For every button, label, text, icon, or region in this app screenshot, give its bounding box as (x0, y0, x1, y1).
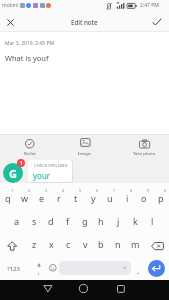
button[interactable]: CHECK SPELLING (28, 160, 72, 182)
button[interactable]: i (119, 189, 135, 207)
staticText: a (14, 215, 20, 227)
button[interactable]: ?123 (2, 260, 24, 278)
staticText: 1 (20, 160, 23, 166)
staticText: 2:47 PM (140, 2, 159, 9)
button[interactable]: q (0, 189, 16, 207)
button[interactable] (37, 263, 41, 270)
staticText: g (82, 215, 88, 227)
staticText: 6 (96, 188, 99, 193)
button[interactable]: k (127, 212, 143, 230)
staticText: mobinl (2, 2, 19, 9)
button[interactable] (7, 241, 17, 251)
staticText: your (33, 170, 51, 181)
staticText: Edit note (71, 18, 98, 26)
staticText: s (32, 215, 37, 227)
staticText: p (158, 192, 164, 204)
button[interactable]: d (43, 212, 59, 230)
staticText: j (117, 215, 120, 227)
staticText: z (32, 238, 37, 250)
button[interactable]: , (34, 262, 44, 280)
button[interactable]: m (127, 235, 143, 253)
staticText: 7 (113, 188, 116, 193)
button[interactable]: b (93, 235, 109, 253)
staticText: 5 (79, 188, 82, 193)
button[interactable] (7, 19, 14, 26)
staticText: n (115, 238, 121, 250)
staticText: x (49, 238, 54, 250)
button[interactable] (139, 139, 150, 148)
button[interactable] (151, 242, 164, 250)
staticText: 3 (45, 188, 48, 193)
staticText: Take photo (133, 150, 156, 156)
button[interactable]: n (110, 235, 126, 253)
staticText: q (5, 192, 11, 204)
button[interactable]: t (68, 189, 84, 207)
button[interactable]: w (17, 189, 33, 207)
button[interactable] (59, 261, 131, 275)
button[interactable] (80, 138, 91, 147)
staticText: 4 (62, 188, 65, 193)
staticText: r (57, 192, 61, 204)
staticText: ?123 (7, 265, 20, 273)
button[interactable]: g (77, 212, 93, 230)
staticText: 8 (130, 188, 133, 193)
button[interactable]: l (144, 212, 160, 230)
staticText: k (133, 215, 138, 227)
staticText: u (107, 192, 113, 204)
button[interactable] (25, 139, 35, 149)
staticText: 2 (28, 188, 31, 193)
button[interactable] (148, 260, 165, 277)
button[interactable]: y (85, 189, 101, 207)
staticText: l (151, 215, 154, 227)
button[interactable] (117, 285, 125, 293)
staticText: , (38, 267, 40, 276)
button[interactable]: e (34, 189, 50, 207)
button[interactable]: p (153, 189, 169, 207)
button[interactable] (152, 18, 162, 26)
staticText: y (91, 192, 96, 204)
staticText: Image (78, 150, 91, 156)
button[interactable]: o (136, 189, 152, 207)
staticText: t (74, 192, 78, 204)
button[interactable]: z (26, 235, 42, 253)
button[interactable]: s (26, 212, 42, 230)
button[interactable] (79, 284, 88, 293)
button[interactable]: c (60, 235, 76, 253)
staticText: G (9, 166, 17, 181)
button[interactable]: a (9, 212, 25, 230)
staticText: Bullet (24, 150, 36, 156)
staticText: i (126, 192, 129, 204)
staticText: . (137, 264, 140, 276)
button[interactable]: f (60, 212, 76, 230)
staticText: c (66, 238, 71, 250)
button[interactable]: j (110, 212, 126, 230)
button[interactable]: u (102, 189, 118, 207)
staticText: d (48, 215, 54, 227)
button[interactable]: h (93, 212, 109, 230)
button[interactable] (49, 264, 57, 272)
staticText: e (39, 192, 45, 204)
staticText: CHECK SPELLING (34, 163, 68, 168)
button[interactable]: v (77, 235, 93, 253)
button[interactable] (43, 285, 53, 293)
staticText: f (66, 215, 70, 227)
staticText: Mar 3, 2019, 2:45 PM (5, 40, 55, 47)
staticText: h (98, 215, 104, 227)
staticText: 9 (147, 188, 150, 193)
button[interactable]: G (3, 163, 23, 183)
button[interactable]: x (43, 235, 59, 253)
staticText: m (131, 238, 140, 250)
button[interactable]: . (133, 261, 143, 279)
button[interactable]: r (51, 189, 67, 207)
staticText: What is youf (5, 53, 49, 63)
staticText: 0 (164, 188, 167, 193)
staticText: 1 (11, 188, 14, 193)
staticText: b (98, 238, 104, 250)
staticText: v (83, 238, 88, 250)
staticText: o (141, 192, 147, 204)
staticText: w (21, 192, 29, 204)
